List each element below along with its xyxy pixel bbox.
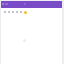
button[interactable]: Menu [1, 1, 62, 8]
button[interactable]: Highlighted item [24, 11, 27, 14]
button[interactable]: Add [23, 39, 26, 42]
